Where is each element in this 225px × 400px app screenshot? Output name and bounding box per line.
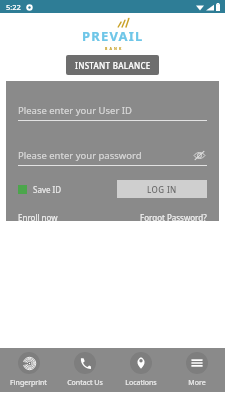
staticText: Locations xyxy=(125,378,157,388)
staticText: 5:22 xyxy=(6,2,21,12)
button[interactable]: Contact Us xyxy=(57,348,113,392)
button[interactable]: Enroll now xyxy=(18,212,58,221)
button[interactable]: Show password xyxy=(191,147,207,163)
staticText: Please enter your User ID xyxy=(18,104,132,117)
staticText: PREVAIL xyxy=(82,27,144,45)
staticText: B A N K xyxy=(105,46,122,51)
button[interactable]: More xyxy=(169,348,225,392)
staticText: Forgot Password? xyxy=(140,212,207,221)
staticText: Please enter your password xyxy=(18,149,142,162)
button[interactable]: Fingerprint xyxy=(0,348,57,392)
button[interactable]: Save ID xyxy=(18,184,62,195)
button[interactable]: Please enter your password xyxy=(18,145,207,165)
staticText: Fingerprint xyxy=(10,378,47,388)
button[interactable]: Forgot Password? xyxy=(140,212,207,221)
button[interactable]: LOG IN xyxy=(117,180,207,198)
staticText: Enroll now xyxy=(18,212,58,221)
button[interactable]: INSTANT BALANCE xyxy=(66,55,159,75)
button[interactable]: Please enter your User ID xyxy=(18,100,207,120)
staticText: INSTANT BALANCE xyxy=(75,60,151,71)
button[interactable]: Locations xyxy=(113,348,169,392)
staticText: Contact Us xyxy=(67,378,103,388)
staticText: Save ID xyxy=(33,184,62,195)
staticText: LOG IN xyxy=(147,184,177,195)
staticText: More xyxy=(188,378,206,388)
